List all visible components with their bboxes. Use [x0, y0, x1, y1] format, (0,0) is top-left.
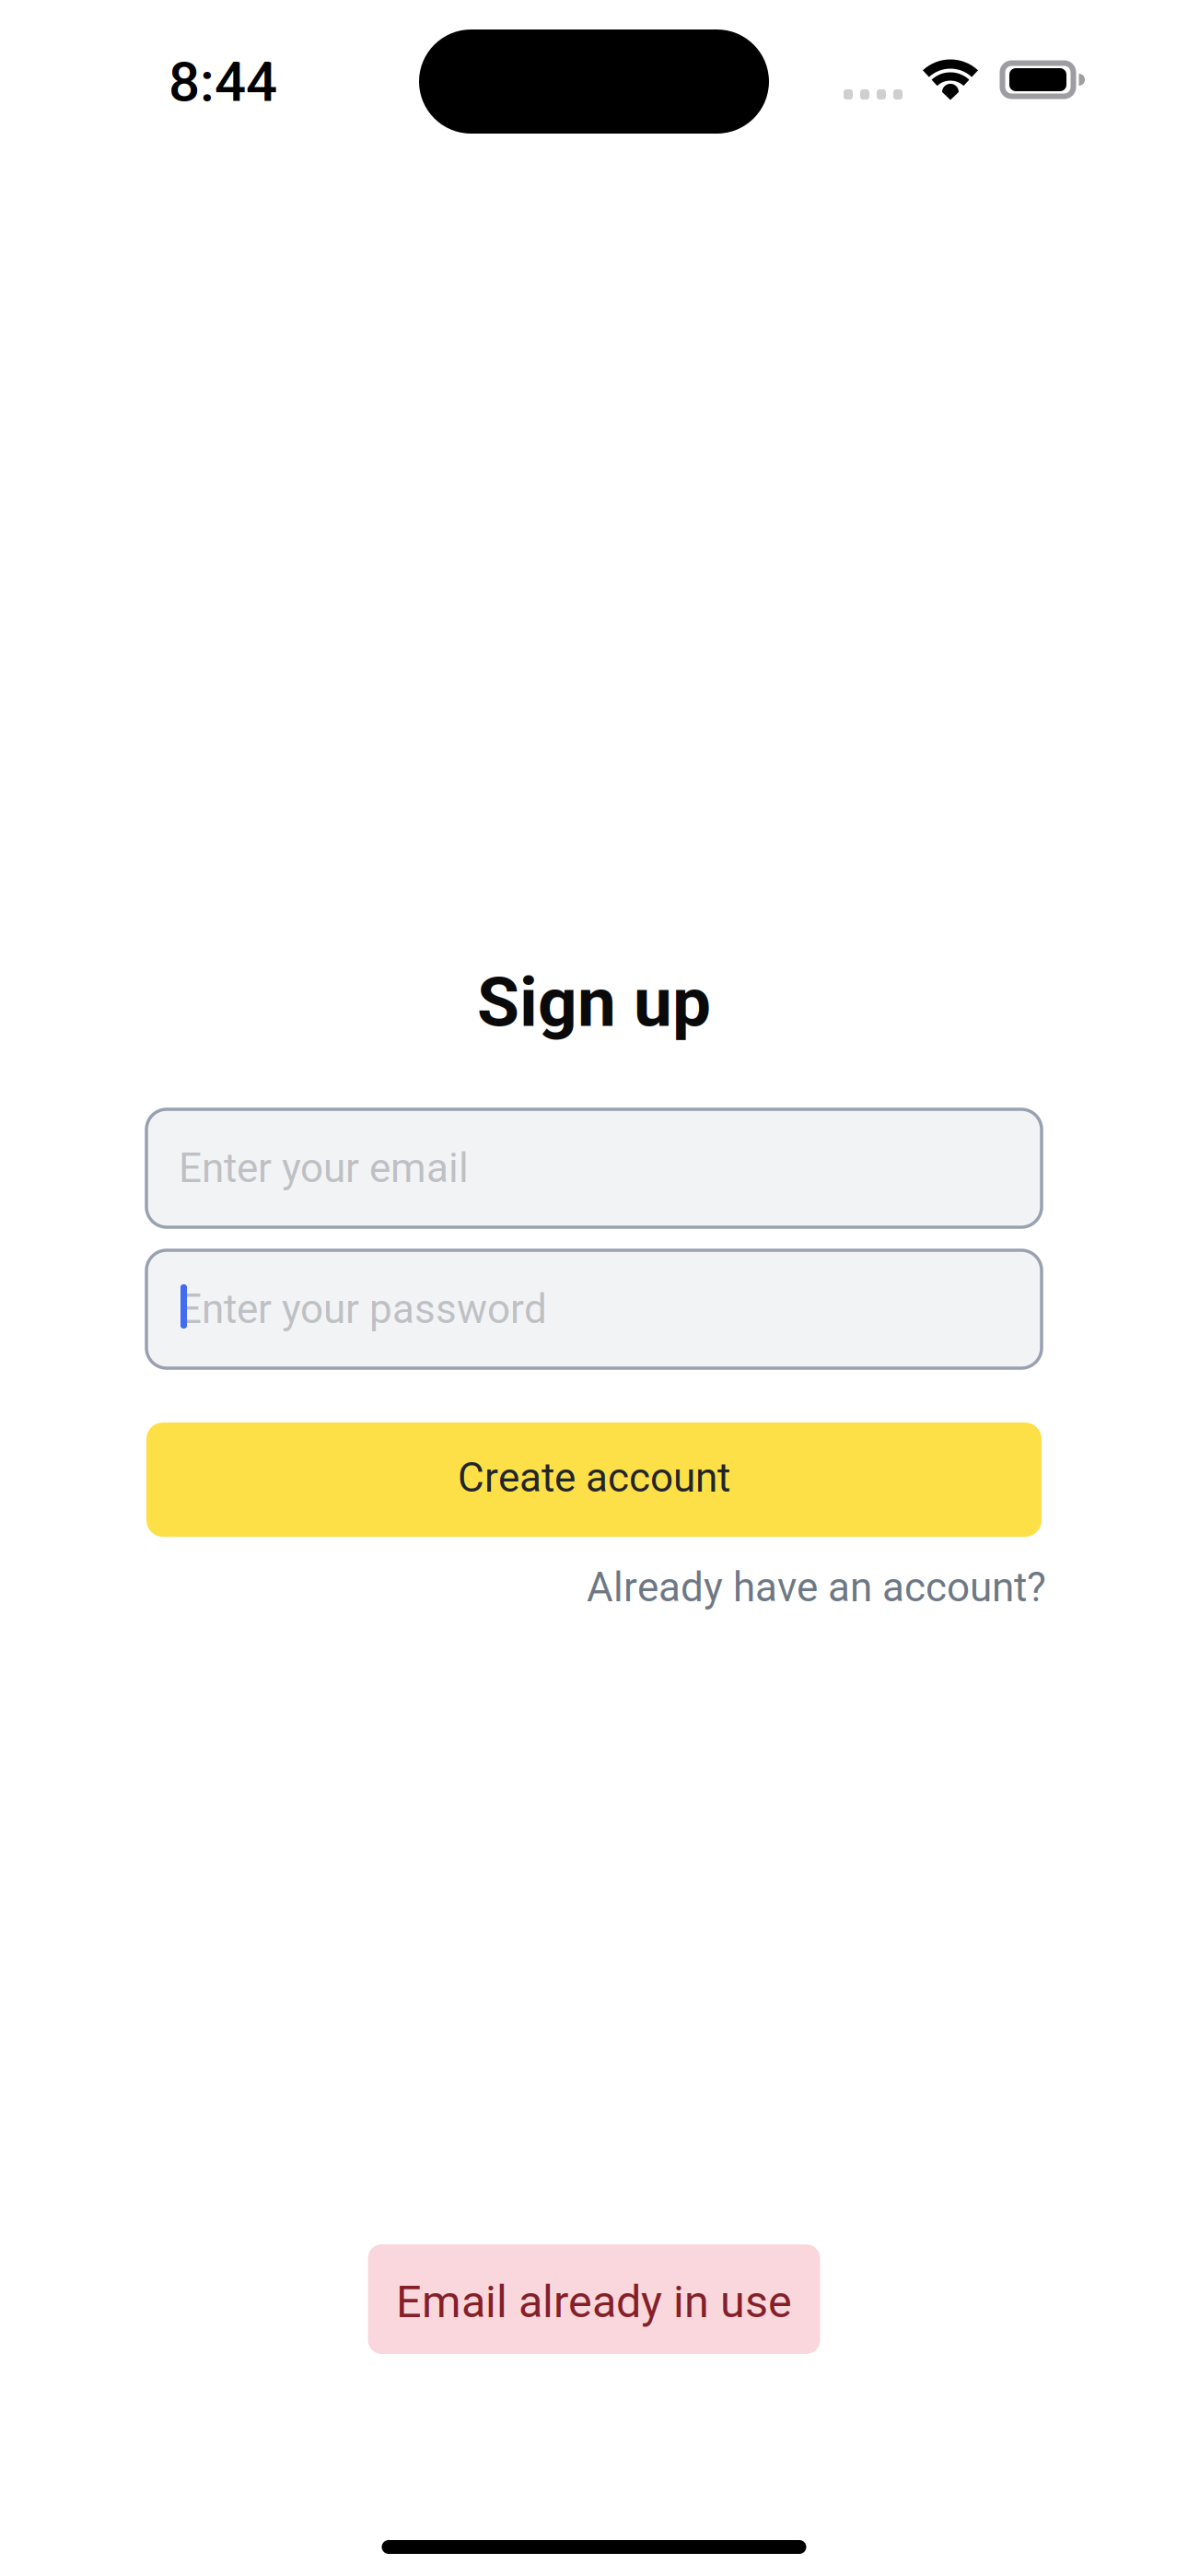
staticText: Already have an account? — [587, 1564, 1046, 1611]
staticText: Email already in use — [396, 2276, 792, 2328]
button[interactable]: Enter your password — [146, 1250, 1042, 1368]
staticText: Enter your email — [179, 1144, 469, 1192]
button[interactable]: Already have an account? — [146, 1554, 1042, 1621]
button[interactable]: Create account — [146, 1423, 1042, 1537]
staticText: Enter your password — [179, 1285, 547, 1333]
button[interactable]: Enter your email — [146, 1109, 1042, 1227]
staticText: 8:44 — [169, 50, 277, 114]
staticText: Sign up — [477, 962, 711, 1043]
staticText: Create account — [458, 1454, 730, 1502]
